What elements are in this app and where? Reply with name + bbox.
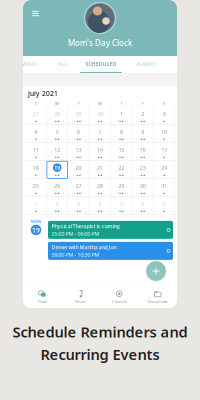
- staticText: 17: [161, 146, 167, 153]
- button[interactable]: 4: [25, 125, 46, 143]
- button[interactable]: 6: [132, 197, 153, 215]
- staticText: 15: [118, 146, 124, 153]
- staticText: 8: [120, 128, 123, 135]
- button[interactable]: 23: [132, 161, 153, 179]
- button[interactable]: 10: [153, 125, 175, 143]
- button[interactable]: 2: [132, 107, 153, 125]
- button[interactable]: 12: [46, 143, 68, 161]
- button[interactable]: Music: [61, 290, 100, 304]
- staticText: 19: [32, 225, 40, 234]
- staticText: F: [142, 101, 144, 106]
- button[interactable]: 3: [68, 197, 89, 215]
- button[interactable]: Physical Therapist is coming: [48, 221, 173, 239]
- button[interactable]: SCHEDULED: [78, 56, 124, 73]
- staticText: SCHEDULED: [85, 60, 116, 68]
- button[interactable]: Documents: [138, 290, 177, 304]
- button[interactable]: 30: [89, 107, 111, 125]
- button[interactable]: 28: [46, 107, 68, 125]
- button[interactable]: 27: [68, 179, 89, 197]
- staticText: 19: [54, 164, 60, 171]
- button[interactable]: 19: [46, 161, 68, 179]
- button[interactable]: 22: [111, 161, 132, 179]
- staticText: 20: [76, 164, 82, 171]
- button[interactable]: 4: [89, 197, 111, 215]
- staticText: 13: [76, 146, 82, 153]
- staticText: S: [163, 101, 165, 106]
- button[interactable]: 3: [153, 107, 175, 125]
- staticText: Documents: [148, 299, 168, 304]
- button[interactable]: 11: [25, 143, 46, 161]
- button[interactable]: 9: [132, 125, 153, 143]
- button[interactable]: 13: [68, 143, 89, 161]
- button[interactable]: Add event: [146, 261, 166, 281]
- staticText: 22: [118, 164, 124, 171]
- button[interactable]: 27: [25, 107, 46, 125]
- button[interactable]: 24: [153, 161, 175, 179]
- staticText: 14: [97, 146, 103, 153]
- button[interactable]: 20: [68, 161, 89, 179]
- staticText: Check-In: [112, 299, 127, 304]
- button[interactable]: ALARMS: [129, 56, 163, 73]
- button[interactable]: 28: [89, 179, 111, 197]
- staticText: 18: [33, 164, 39, 171]
- button[interactable]: 14: [89, 143, 111, 161]
- staticText: 10: [161, 128, 167, 135]
- button[interactable]: Check-In: [100, 290, 138, 304]
- staticText: 4: [34, 128, 37, 135]
- button[interactable]: 25: [25, 179, 46, 197]
- button[interactable]: 15: [111, 143, 132, 161]
- staticText: S: [35, 101, 37, 106]
- staticText: July 2021: [28, 89, 58, 98]
- staticText: 11: [33, 146, 39, 153]
- button[interactable]: Dinner with Martha and Jon: [48, 242, 173, 260]
- button[interactable]: Feed: [23, 290, 61, 304]
- staticText: 5: [56, 128, 59, 135]
- staticText: OWING: [18, 60, 37, 68]
- button[interactable]: ALL: [51, 56, 75, 73]
- button[interactable]: 1: [111, 107, 132, 125]
- button[interactable]: 5: [111, 197, 132, 215]
- staticText: Schedule Reminders and: [12, 322, 187, 341]
- staticText: 24: [161, 164, 167, 171]
- button[interactable]: 16: [132, 143, 153, 161]
- button[interactable]: 1: [25, 197, 46, 215]
- staticText: T: [120, 101, 122, 106]
- button[interactable]: OWING: [11, 56, 44, 73]
- button[interactable]: FI: [171, 56, 193, 73]
- staticText: Feed: [38, 299, 46, 304]
- staticText: 7: [98, 128, 101, 135]
- button[interactable]: 8: [111, 125, 132, 143]
- staticText: ALARMS: [136, 60, 156, 68]
- button[interactable]: 26: [46, 179, 68, 197]
- staticText: 3: [77, 200, 80, 207]
- staticText: Mom's Day Clock: [68, 37, 132, 48]
- button[interactable]: 6: [68, 125, 89, 143]
- button[interactable]: 7: [153, 197, 175, 215]
- staticText: 4: [98, 200, 101, 207]
- staticText: 2: [141, 110, 144, 117]
- staticText: 26: [54, 182, 60, 189]
- button[interactable]: 18: [25, 161, 46, 179]
- button[interactable]: 29: [68, 107, 89, 125]
- staticText: 28: [97, 182, 103, 189]
- staticText: 23: [140, 164, 146, 171]
- button[interactable]: 5: [46, 125, 68, 143]
- staticText: 2: [56, 200, 59, 207]
- button[interactable]: 30: [132, 179, 153, 197]
- button[interactable]: 17: [153, 143, 175, 161]
- button[interactable]: 31: [153, 179, 175, 197]
- button[interactable]: 2: [46, 197, 68, 215]
- staticText: 31: [161, 182, 167, 189]
- button[interactable]: 29: [111, 179, 132, 197]
- button[interactable]: 7: [89, 125, 111, 143]
- button[interactable]: 21: [89, 161, 111, 179]
- staticText: 27: [33, 110, 39, 117]
- staticText: 7: [163, 200, 166, 207]
- staticText: 5: [120, 200, 123, 207]
- staticText: M: [55, 101, 59, 106]
- staticText: 28: [54, 110, 60, 117]
- staticText: 3: [163, 110, 166, 117]
- button[interactable]: Menu: [29, 8, 42, 19]
- staticText: 09:00 PM - 10:30 PM: [51, 251, 99, 258]
